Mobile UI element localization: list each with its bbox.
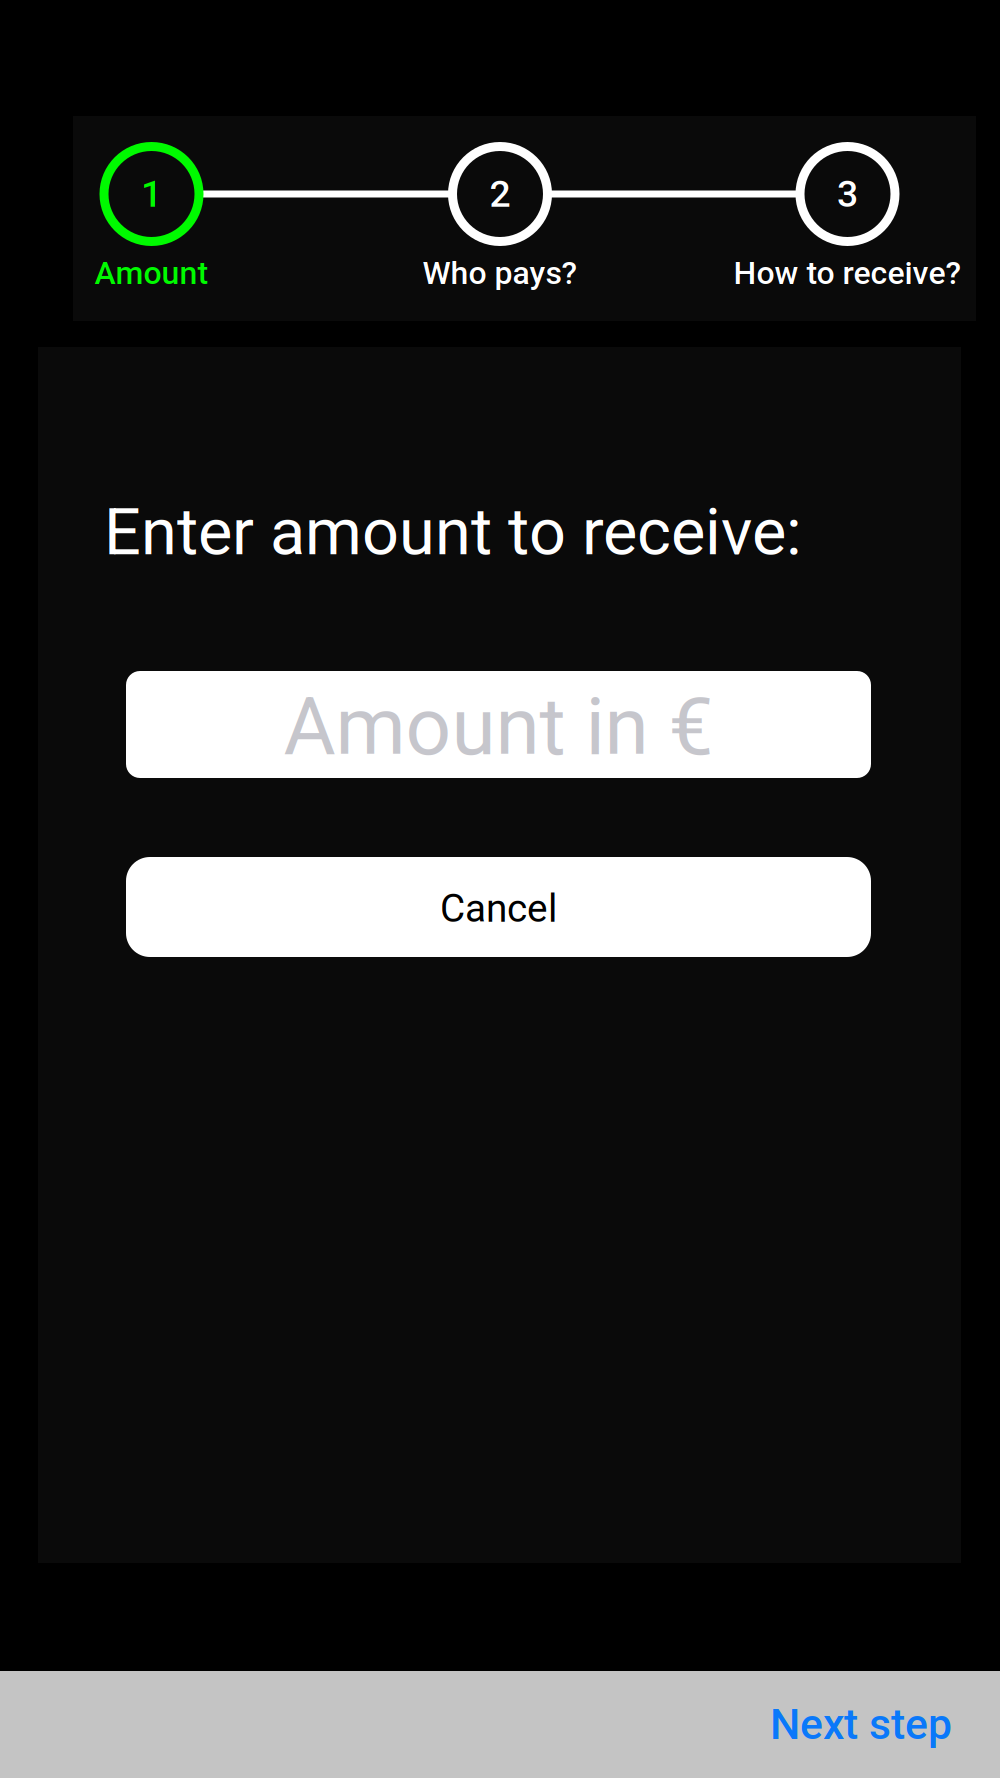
button[interactable]: Step 1, Amount	[99, 142, 203, 246]
staticText: Next step	[770, 1699, 952, 1749]
staticText: 1	[141, 172, 162, 216]
staticText: Amount in €	[283, 680, 713, 774]
staticText: 2	[489, 172, 510, 216]
staticText: How to receive?	[733, 254, 961, 292]
button[interactable]: Step 3, How to receive	[795, 142, 899, 246]
button[interactable]: Step 2, Who pays	[448, 142, 552, 246]
staticText: 3	[837, 172, 858, 216]
button[interactable]: Amount in €	[126, 671, 871, 778]
button[interactable]: Next step	[770, 1667, 1000, 1778]
button[interactable]: Cancel	[126, 857, 871, 957]
staticText: Enter amount to receive:	[104, 494, 802, 570]
staticText: Cancel	[440, 886, 557, 931]
staticText: Amount	[94, 254, 208, 292]
staticText: Who pays?	[422, 254, 577, 292]
